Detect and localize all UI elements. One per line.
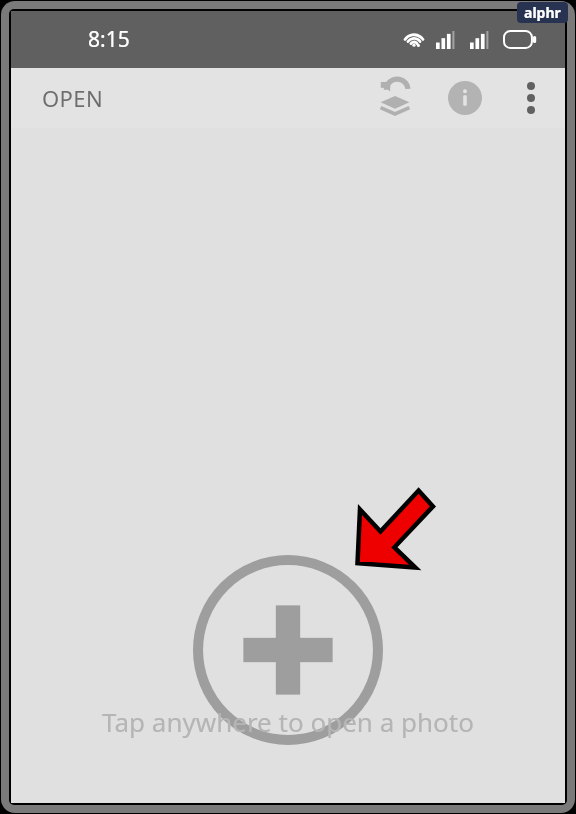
staticText: alphr [524, 3, 561, 22]
button[interactable]: Tap anywhere to open a photo [11, 128, 565, 803]
button[interactable]: More options [505, 72, 557, 124]
staticText: Tap anywhere to open a photo [11, 704, 565, 739]
button[interactable]: Revert layers [369, 72, 421, 124]
staticText: OPEN [42, 83, 104, 113]
staticText: 8:15 [88, 25, 130, 54]
button[interactable]: Info [439, 72, 491, 124]
